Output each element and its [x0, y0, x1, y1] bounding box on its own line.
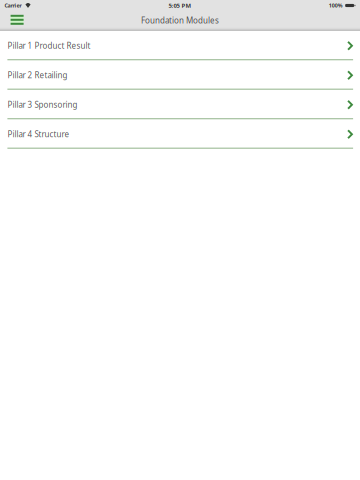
staticText: Foundation Modules: [141, 15, 219, 26]
button[interactable]: Pillar 2 Retailing: [0, 60, 360, 90]
staticText: 5:05 PM: [168, 1, 191, 10]
staticText: 100%: [329, 2, 343, 9]
staticText: Pillar 2 Retailing: [8, 70, 68, 80]
staticText: Pillar 1 Product Result: [8, 40, 91, 51]
button[interactable]: Pillar 4 Structure: [0, 119, 360, 149]
staticText: Pillar 4 Structure: [8, 129, 70, 139]
button[interactable]: Menu: [0, 12, 33, 28]
button[interactable]: Pillar 1 Product Result: [0, 31, 360, 60]
staticText: Pillar 3 Sponsoring: [8, 99, 78, 110]
staticText: Carrier: [4, 2, 21, 9]
button[interactable]: Pillar 3 Sponsoring: [0, 90, 360, 119]
